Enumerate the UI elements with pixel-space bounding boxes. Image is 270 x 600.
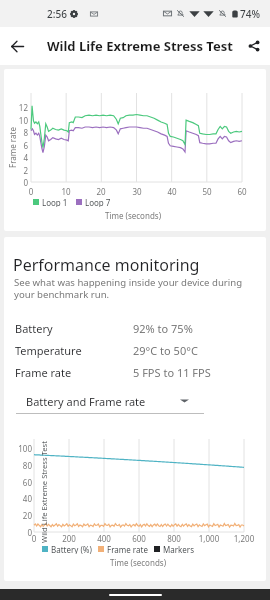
staticText: 30: [127, 186, 147, 197]
staticText: 0: [8, 177, 28, 188]
staticText: 1,000: [196, 533, 222, 544]
staticText: Battery and Frame rate: [26, 394, 146, 409]
staticText: 92% to 75%: [133, 321, 193, 336]
staticText: Performance monitoring: [13, 254, 200, 276]
staticText: 50: [197, 186, 217, 197]
staticText: 20: [91, 186, 111, 197]
staticText: 2:56: [47, 7, 67, 21]
staticText: 10: [8, 115, 28, 126]
staticText: See what was happening inside your devic…: [14, 276, 243, 300]
staticText: 4: [8, 152, 28, 163]
staticText: Time (seconds): [88, 557, 188, 568]
staticText: 200: [56, 533, 82, 544]
button[interactable]: Battery and Frame rate: [16, 389, 204, 413]
staticText: Time (seconds): [83, 210, 183, 221]
staticText: 8: [8, 127, 28, 138]
button[interactable]: Temperature: [4, 341, 266, 359]
staticText: 40: [162, 186, 182, 197]
staticText: Frame rate: [7, 127, 18, 168]
staticText: Frame rate: [15, 365, 72, 380]
staticText: 6: [8, 140, 28, 151]
staticText: 600: [126, 533, 152, 544]
staticText: 100: [9, 443, 32, 454]
staticText: 0: [21, 186, 41, 197]
staticText: Battery (%): [51, 544, 92, 554]
staticText: Temperature: [15, 343, 82, 358]
staticText: 74%: [240, 7, 260, 21]
staticText: 29°C to 50°C: [133, 343, 198, 358]
staticText: Wild Life Extreme Stress Test: [36, 434, 46, 544]
staticText: 40: [9, 493, 32, 504]
button[interactable]: Back: [0, 27, 34, 65]
staticText: Loop 7: [85, 197, 111, 207]
staticText: 0: [9, 527, 32, 538]
staticText: 80: [9, 460, 32, 471]
staticText: 60: [232, 186, 252, 197]
staticText: 0: [21, 533, 47, 544]
staticText: 20: [9, 510, 32, 521]
staticText: 400: [91, 533, 117, 544]
staticText: 1,200: [231, 533, 257, 544]
staticText: 12: [8, 102, 28, 113]
staticText: 2: [8, 165, 28, 176]
staticText: 5 FPS to 11 FPS: [133, 365, 211, 380]
staticText: Battery: [15, 321, 53, 336]
staticText: 800: [161, 533, 187, 544]
button[interactable]: Share: [240, 27, 268, 65]
staticText: Loop 1: [42, 197, 68, 207]
staticText: Wild Life Extreme Stress Test: [47, 37, 233, 55]
button[interactable]: Frame rate: [4, 363, 266, 381]
staticText: Markers: [163, 544, 194, 554]
button[interactable]: Battery: [4, 319, 266, 337]
staticText: 60: [9, 477, 32, 488]
staticText: 10: [56, 186, 76, 197]
staticText: Frame rate: [107, 544, 148, 554]
